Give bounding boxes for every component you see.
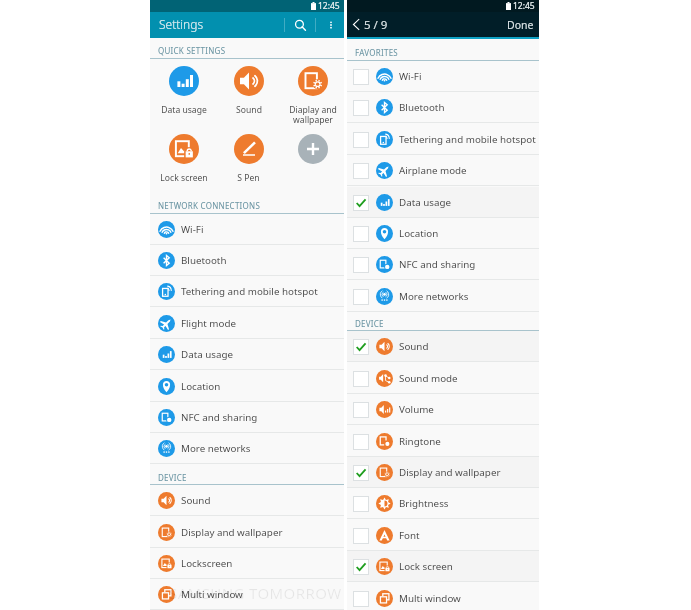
staticText: Display and wallpaper <box>399 466 501 479</box>
button[interactable]: S Pen <box>216 128 281 190</box>
button[interactable]: Lockscreen <box>150 548 344 579</box>
staticText: Settings <box>159 16 204 32</box>
button[interactable]: Volume <box>347 394 539 425</box>
staticText: Lockscreen <box>181 557 233 570</box>
staticText: DEVICE <box>158 472 187 483</box>
staticText: Lock screen <box>399 560 453 573</box>
staticText: Airplane mode <box>399 164 467 177</box>
staticText: Wi-Fi <box>181 223 204 236</box>
button[interactable]: Location <box>150 371 344 402</box>
button[interactable]: Multi window <box>347 583 539 610</box>
button[interactable]: Data usage <box>150 339 344 370</box>
staticText: Location <box>181 380 221 393</box>
button[interactable]: Tethering and mobile hotspot <box>150 276 344 307</box>
button[interactable]: More options <box>318 12 343 38</box>
button[interactable]: Wi-Fi <box>150 214 344 245</box>
button[interactable]: Sound <box>216 60 281 122</box>
staticText: Multi window <box>181 588 243 601</box>
button[interactable]: Diaplay and wallpaper <box>280 60 345 122</box>
staticText: Flight mode <box>181 317 236 330</box>
button[interactable]: Data usage <box>347 187 539 218</box>
staticText: Bluetooth <box>399 101 445 114</box>
staticText: Volume <box>399 403 434 416</box>
staticText: Multi window <box>399 592 461 605</box>
button[interactable]: More networks <box>347 281 539 312</box>
button[interactable]: Data usage <box>151 60 216 122</box>
staticText: Bluetooth <box>181 254 227 267</box>
staticText: FAVORITES <box>355 47 398 58</box>
button[interactable]: Sound <box>150 485 344 516</box>
staticText: Sound <box>236 104 262 116</box>
button[interactable]: Display and wallpaper <box>150 517 344 548</box>
staticText: NETWORK CONNECTIONS <box>158 200 261 211</box>
button[interactable]: Sound mode <box>347 363 539 394</box>
staticText: 5 / 9 <box>364 17 388 33</box>
staticText: Display and wallpaper <box>181 526 283 539</box>
staticText: Font <box>399 529 420 542</box>
staticText: SAMSUNG TOMORROW <box>169 583 342 603</box>
staticText: Ringtone <box>399 435 441 448</box>
staticText: QUICK SETTINGS <box>158 45 226 56</box>
button[interactable]: Sound <box>347 331 539 362</box>
button[interactable]: Search <box>287 12 313 38</box>
staticText: More networks <box>399 290 469 303</box>
button[interactable]: Brightness <box>347 488 539 519</box>
button[interactable]: Tethering and mobile hotspot <box>347 124 539 155</box>
button[interactable]: 5 / 9 <box>347 12 395 37</box>
button[interactable] <box>280 128 345 190</box>
button[interactable]: Ringtone <box>347 426 539 457</box>
button[interactable]: Done <box>501 12 539 37</box>
button[interactable]: Bluetooth <box>347 92 539 123</box>
staticText: NFC and sharing <box>181 411 258 424</box>
button[interactable]: Font <box>347 520 539 551</box>
button[interactable]: NFC and sharing <box>150 402 344 433</box>
staticText: NFC and sharing <box>399 258 476 271</box>
staticText: Sound <box>399 340 429 353</box>
staticText: Tethering and mobile hotspot <box>181 285 318 298</box>
staticText: Sound mode <box>399 372 458 385</box>
button[interactable]: Wi-Fi <box>347 61 539 92</box>
staticText: DEVICE <box>355 318 384 329</box>
staticText: More networks <box>181 442 251 455</box>
button[interactable]: Display and wallpaper <box>347 457 539 488</box>
staticText: S Pen <box>237 172 260 184</box>
staticText: Lock screen <box>160 172 208 184</box>
button[interactable]: Airplane mode <box>347 155 539 186</box>
button[interactable]: Flight mode <box>150 308 344 339</box>
button[interactable]: Lock screen <box>347 551 539 582</box>
staticText: Location <box>399 227 439 240</box>
staticText: Data usage <box>181 348 234 361</box>
button[interactable]: NFC and sharing <box>347 249 539 280</box>
staticText: Tethering and mobile hotspot <box>399 133 536 146</box>
button[interactable]: More networks <box>150 433 344 464</box>
staticText: Diaplay and wallpaper <box>289 104 337 125</box>
staticText: Done <box>507 18 534 32</box>
button[interactable]: Bluetooth <box>150 245 344 276</box>
button[interactable]: Lock screen <box>151 128 216 190</box>
staticText: Data usage <box>161 104 207 116</box>
staticText: 12:45 <box>513 0 535 12</box>
staticText: 12:45 <box>318 0 340 12</box>
staticText: Sound <box>181 494 211 507</box>
staticText: Wi-Fi <box>399 70 422 83</box>
button[interactable]: Multi window <box>150 579 344 610</box>
button[interactable]: Location <box>347 218 539 249</box>
staticText: Data usage <box>399 196 452 209</box>
staticText: Brightness <box>399 497 449 510</box>
